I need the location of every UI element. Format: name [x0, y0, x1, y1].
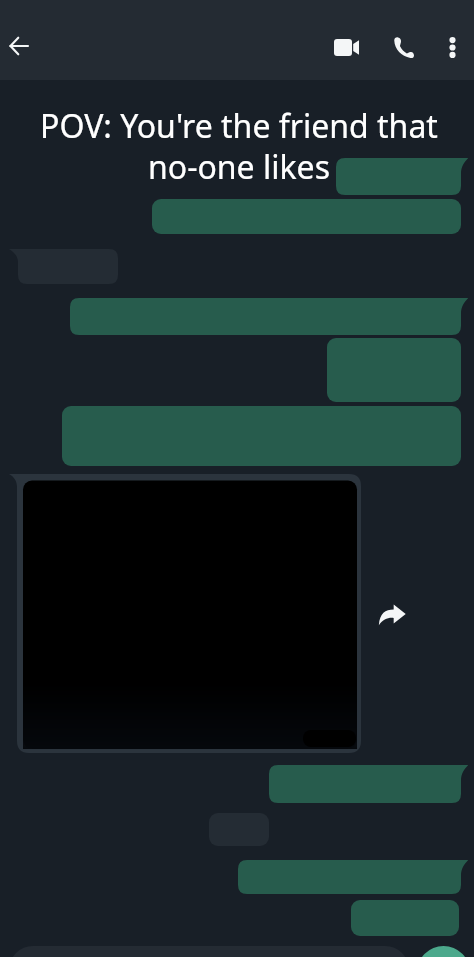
button[interactable]: Forward: [374, 596, 410, 632]
button[interactable]: [62, 406, 473, 466]
button[interactable]: Voice call: [381, 25, 425, 69]
button[interactable]: [9, 249, 118, 284]
staticText: POV: You're the friend that no-one likes: [24, 104, 454, 189]
button[interactable]: [351, 900, 471, 936]
button[interactable]: [269, 765, 473, 803]
button[interactable]: [70, 298, 473, 335]
button[interactable]: Video call: [324, 25, 368, 69]
button[interactable]: [327, 338, 473, 402]
button[interactable]: Back: [0, 24, 44, 68]
button[interactable]: [238, 860, 473, 894]
button[interactable]: [152, 199, 473, 234]
button[interactable]: More options: [430, 25, 474, 69]
button[interactable]: Send: [417, 946, 470, 957]
button[interactable]: [336, 158, 473, 195]
button[interactable]: Photo: [9, 474, 361, 753]
